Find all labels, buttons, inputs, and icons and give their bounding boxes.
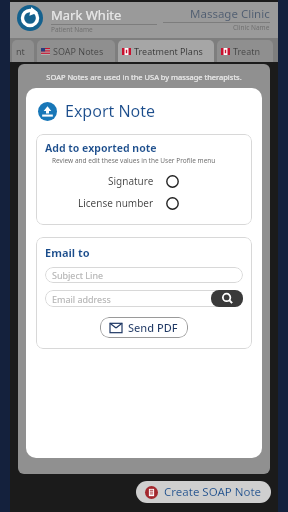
staticText: Treatment Plans [134,45,203,57]
staticText: Subject Line [52,269,104,281]
button[interactable]: Email address [45,290,243,307]
staticText: Signature [108,174,154,188]
button[interactable]: Signature [36,174,252,188]
button[interactable]: nt [12,40,34,62]
staticText: SOAP Notes are used in the USA by massag… [18,72,270,82]
staticText: Export Note [65,100,156,122]
staticText: Clinic Name [233,23,270,32]
staticText: Massage Clinic [190,6,270,22]
button[interactable]: SOAP Notes [37,40,115,62]
button[interactable]: Send PDF [100,317,188,338]
staticText: Treatn [233,45,261,57]
staticText: Send PDF [128,320,178,335]
staticText: Create SOAP Note [164,484,262,500]
staticText: SOAP Notes [53,45,104,57]
button[interactable]: Create SOAP Note [136,481,271,503]
staticText: Mark White [51,6,122,24]
staticText: License number [78,196,154,210]
staticText: Review and edit these values in the User… [52,156,216,165]
button[interactable]: Back [16,4,44,32]
staticText: Email to [45,245,90,260]
staticText: Add to exported note [45,141,157,155]
staticText: nt [16,45,25,57]
staticText: Email address [52,293,111,305]
button[interactable]: Search contacts [211,290,243,307]
button[interactable]: Treatment Plans [118,40,214,62]
button[interactable]: Treatn [217,40,273,62]
staticText: Patient Name [51,25,93,34]
button[interactable]: Subject Line [45,267,243,283]
button[interactable]: License number [36,196,252,210]
